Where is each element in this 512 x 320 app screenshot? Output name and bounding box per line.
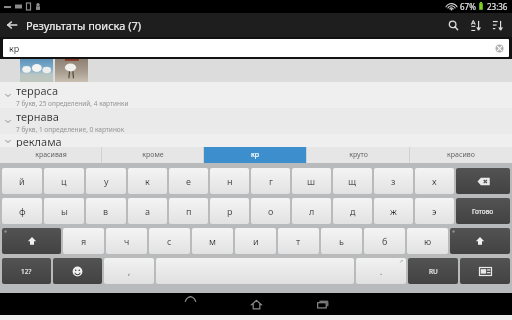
staticText: кроме [142,150,164,160]
staticText: RU [429,267,438,276]
button[interactable]: Готово [456,198,510,224]
staticText: в [103,205,109,217]
staticText: , [128,266,131,277]
button[interactable] [156,258,354,284]
staticText: . [380,266,383,277]
button[interactable]: т [278,228,319,254]
button[interactable]: э [415,198,454,224]
staticText: 12? [21,267,32,276]
staticText: п [186,205,192,217]
button[interactable]: щ [333,168,372,194]
button[interactable]: м [192,228,233,254]
button[interactable]: терраса [0,82,512,108]
staticText: ↗ [399,258,404,264]
staticText: й [19,175,25,187]
button[interactable]: кр [3,39,509,57]
button[interactable]: р [210,198,249,224]
button[interactable]: Recent apps [302,293,342,315]
button[interactable]: з [374,168,413,194]
button[interactable]: ь [321,228,362,254]
button[interactable]: ц [44,168,84,194]
staticText: м [209,235,216,247]
button[interactable]: красиво [410,147,512,163]
button[interactable]: кроме [102,147,203,163]
staticText: 23:36 [487,1,508,12]
button[interactable]: е [169,168,208,194]
staticText: кр [9,42,20,54]
button[interactable]: н [210,168,249,194]
button[interactable]: Search [442,14,464,36]
button[interactable]: с [149,228,190,254]
staticText: э [432,205,437,217]
button[interactable]: ю [407,228,448,254]
button[interactable]: о [251,198,290,224]
staticText: ы [61,205,68,217]
staticText: ш [307,175,316,187]
button[interactable]: л [292,198,331,224]
staticText: и [253,235,259,247]
button[interactable]: . [356,258,406,284]
button[interactable]: ч [106,228,147,254]
staticText: Результаты поиска (7) [26,18,142,33]
staticText: Готово [472,207,494,216]
staticText: к [145,175,150,187]
staticText: б [382,235,388,247]
staticText: круто [349,150,368,160]
button[interactable]: п [169,198,208,224]
button[interactable]: Back [0,13,24,37]
staticText: терраса [16,83,59,98]
button[interactable]: г [251,168,290,194]
staticText: красивая [35,150,67,160]
staticText: х [432,175,437,187]
button[interactable]: Back [170,293,210,315]
button[interactable]: б [364,228,405,254]
button[interactable] [456,168,510,194]
button[interactable]: круто [307,147,409,163]
button[interactable]: Clear search [493,42,505,54]
button[interactable]: Sort alphabetically [464,14,486,36]
staticText: я [81,235,87,247]
staticText: е [186,175,191,187]
button[interactable]: , [104,258,154,284]
staticText: н [227,175,233,187]
staticText: о [268,205,274,217]
button[interactable]: красивая [0,147,101,163]
button[interactable] [460,258,510,284]
staticText: т [296,235,301,247]
button[interactable]: ш [292,168,331,194]
staticText: ч [124,235,130,247]
button[interactable]: 12? [2,258,51,284]
button[interactable]: я [63,228,104,254]
button[interactable]: Sort by size [486,14,508,36]
button[interactable] [53,258,102,284]
button[interactable]: д [333,198,372,224]
button[interactable]: тернава [0,108,512,134]
button[interactable]: в [86,198,126,224]
button[interactable]: х [415,168,454,194]
button[interactable]: реклама [0,134,512,147]
staticText: реклама [16,134,62,147]
staticText: з [391,175,396,187]
staticText: тернава [16,109,59,124]
button[interactable]: й [2,168,42,194]
button[interactable]: Home [236,293,276,315]
button[interactable]: ы [44,198,84,224]
button[interactable]: к [128,168,167,194]
staticText: л [309,205,315,217]
button[interactable]: RU [408,258,458,284]
staticText: д [350,205,356,217]
button[interactable]: ф [2,198,42,224]
button[interactable]: а [128,198,167,224]
staticText: у [104,175,109,187]
button[interactable]: у [86,168,126,194]
staticText: ж [390,205,397,217]
button[interactable] [450,228,510,254]
staticText: 67% [460,1,476,12]
staticText: ю [424,235,432,247]
button[interactable] [2,228,61,254]
staticText: 7 букв, 1 определение, 0 картинок [16,125,125,134]
button[interactable]: и [235,228,276,254]
button[interactable]: ж [374,198,413,224]
button[interactable]: кр [204,147,306,163]
staticText: ц [61,175,67,187]
